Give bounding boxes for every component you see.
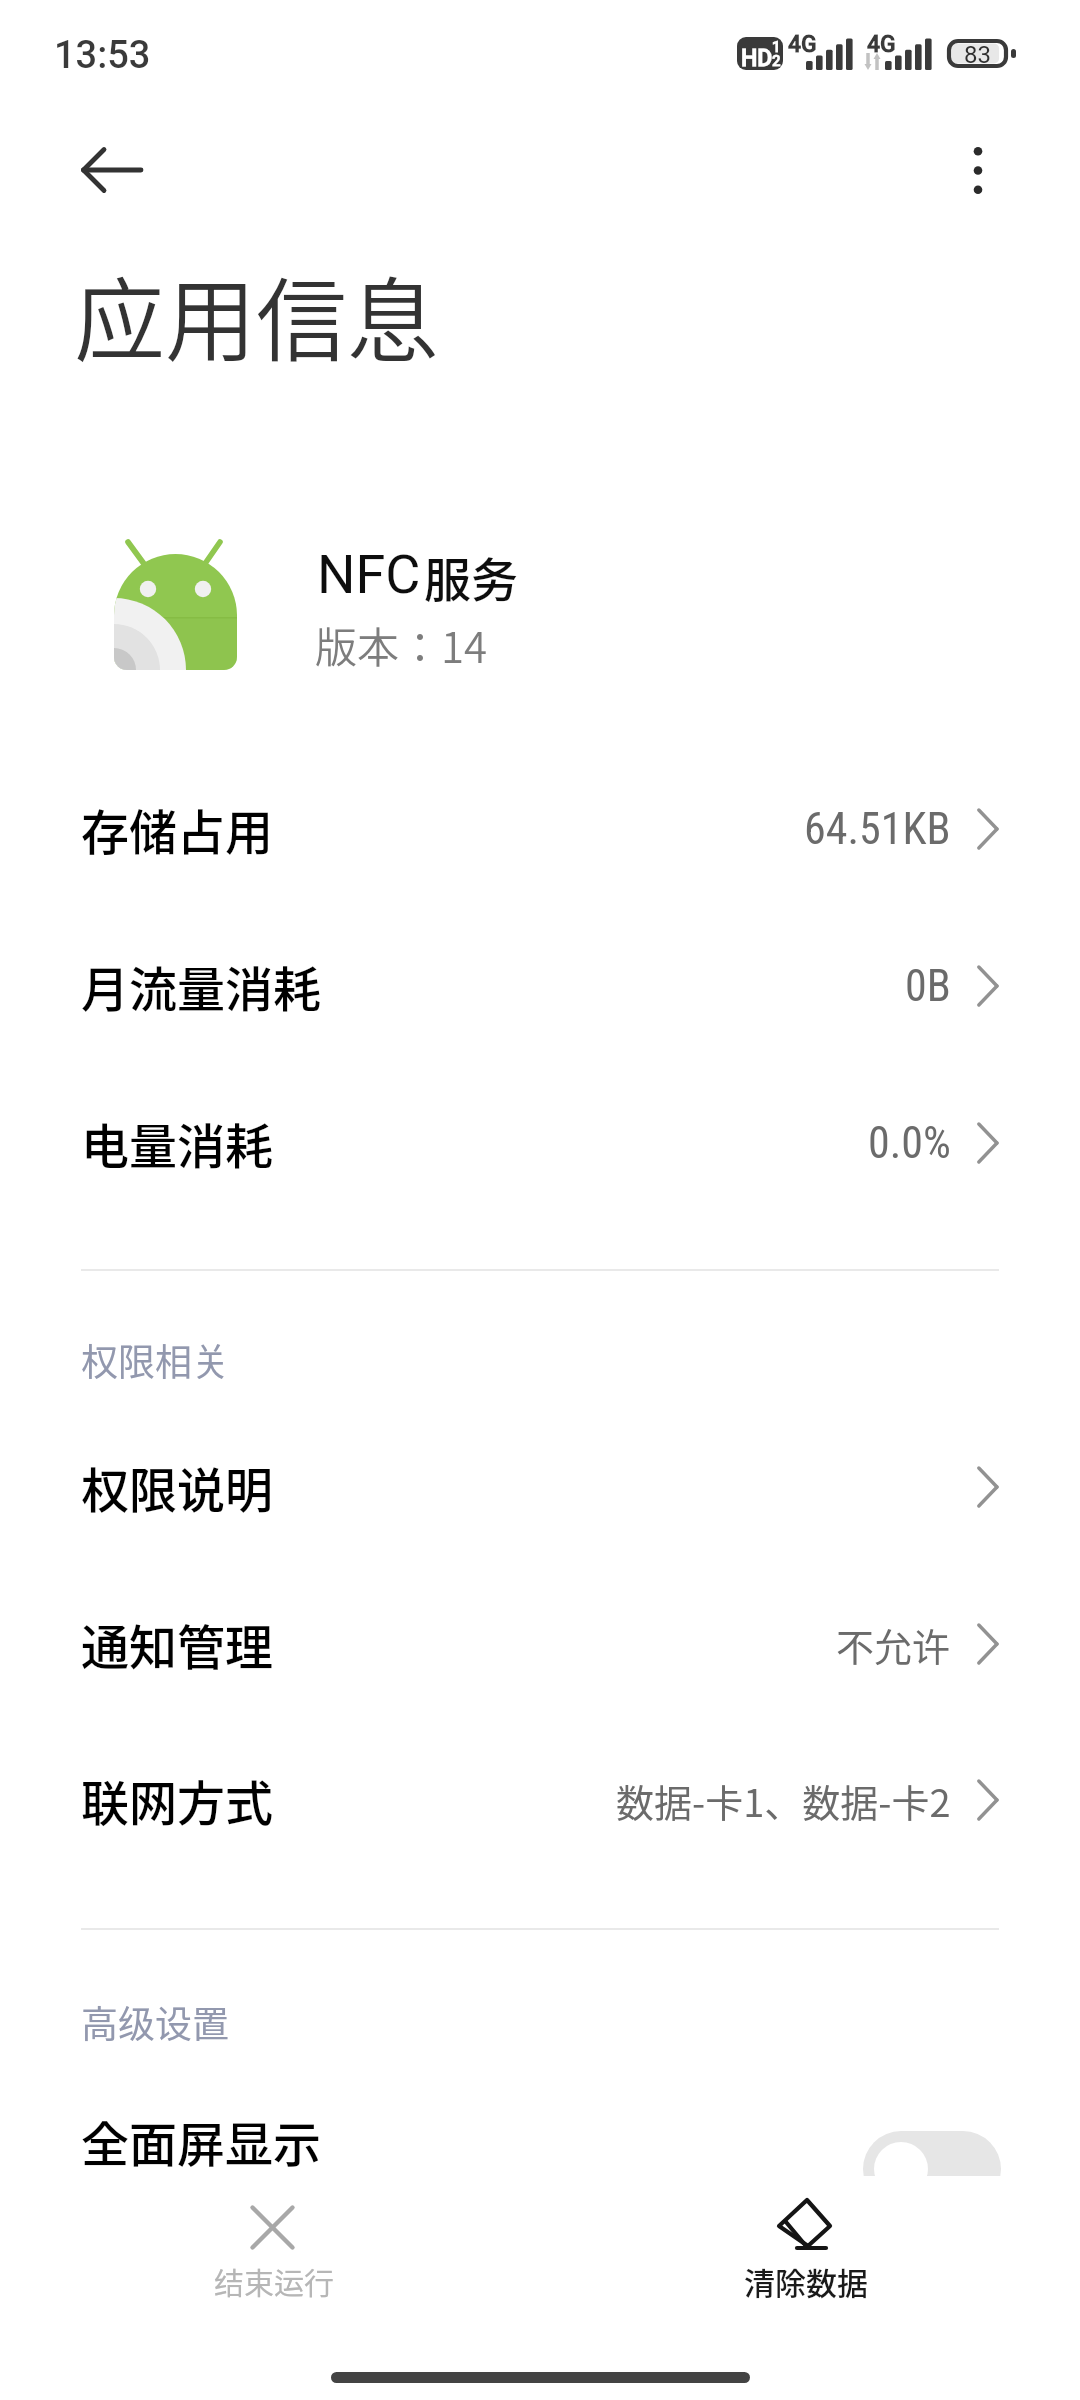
staticText: 4G <box>867 31 896 58</box>
staticText: HD <box>741 45 773 72</box>
staticText: 通知管理 <box>81 1609 274 1679</box>
button[interactable]: 结束运行 <box>0 2176 540 2400</box>
staticText: 2 <box>772 52 781 70</box>
staticText: NFC <box>317 543 421 606</box>
staticText: 64.51KB <box>804 803 951 855</box>
staticText: 13:53 <box>54 33 151 78</box>
button[interactable]: 权限说明 <box>0 1409 1080 1565</box>
staticText: 联网方式 <box>81 1765 274 1835</box>
staticText: 1 <box>772 38 781 56</box>
button[interactable]: 通知管理 <box>0 1566 1080 1722</box>
staticText: 高级设置 <box>81 1995 229 2049</box>
staticText: 不允许 <box>836 1617 951 1672</box>
button[interactable]: 存储占用 <box>0 751 1080 907</box>
staticText: 83 <box>964 41 991 69</box>
staticText: 月流量消耗 <box>81 951 322 1021</box>
button[interactable]: 全面屏显示 <box>0 2063 1080 2219</box>
button[interactable]: Back <box>52 110 172 230</box>
button[interactable]: More options <box>918 110 1038 230</box>
staticText: 权限说明 <box>81 1452 274 1522</box>
staticText: 电量消耗 <box>81 1108 274 1178</box>
button[interactable]: 电量消耗 <box>0 1065 1080 1221</box>
staticText: 权限相关 <box>81 1333 229 1387</box>
staticText: 0B <box>905 960 951 1012</box>
staticText: 4G <box>788 31 817 58</box>
staticText: 全面屏显示 <box>81 2106 322 2176</box>
button[interactable]: 清除数据 <box>540 2176 1080 2400</box>
staticText: 存储占用 <box>81 794 274 864</box>
staticText: 清除数据 <box>744 2259 868 2304</box>
staticText: 0.0% <box>868 1117 951 1169</box>
staticText: 数据-卡1、数据-卡2 <box>616 1773 951 1828</box>
staticText: 应用信息 <box>74 248 439 380</box>
button[interactable]: 月流量消耗 <box>0 908 1080 1064</box>
staticText: 版本：14 <box>315 614 488 675</box>
staticText: 服务 <box>424 542 518 610</box>
staticText: 结束运行 <box>214 2259 334 2302</box>
button[interactable]: 联网方式 <box>0 1722 1080 1878</box>
